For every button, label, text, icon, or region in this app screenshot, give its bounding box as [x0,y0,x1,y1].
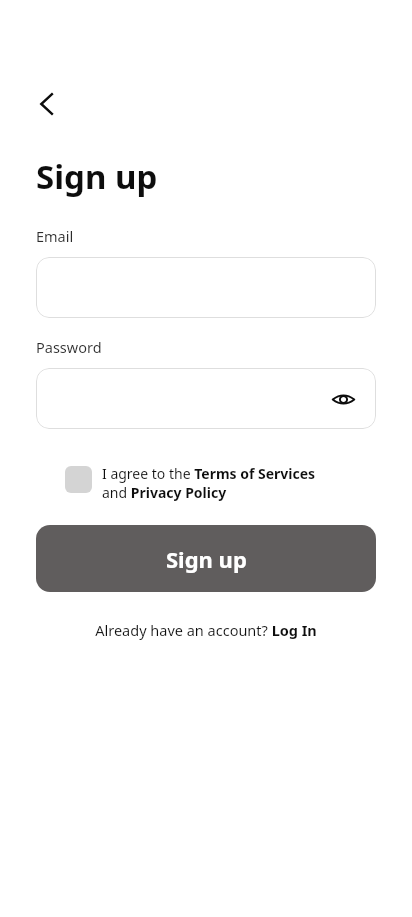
button[interactable]: Show password [328,384,358,414]
staticText: Password [36,337,102,357]
staticText: I agree to the Terms of Services and Pri… [102,464,316,502]
staticText: Already have an account? Log In [95,620,317,640]
button[interactable]: Already have an account? Log In [95,620,317,640]
button[interactable]: Agree to terms [65,464,316,502]
other: Agree to terms [65,466,92,493]
staticText: Sign up [36,154,158,199]
staticText: Email [36,226,74,246]
button[interactable]: Show password [36,368,376,429]
button[interactable]: Back [30,86,66,122]
button[interactable] [36,257,376,318]
staticText: Sign up [166,544,247,574]
button[interactable]: Sign up [36,525,376,592]
